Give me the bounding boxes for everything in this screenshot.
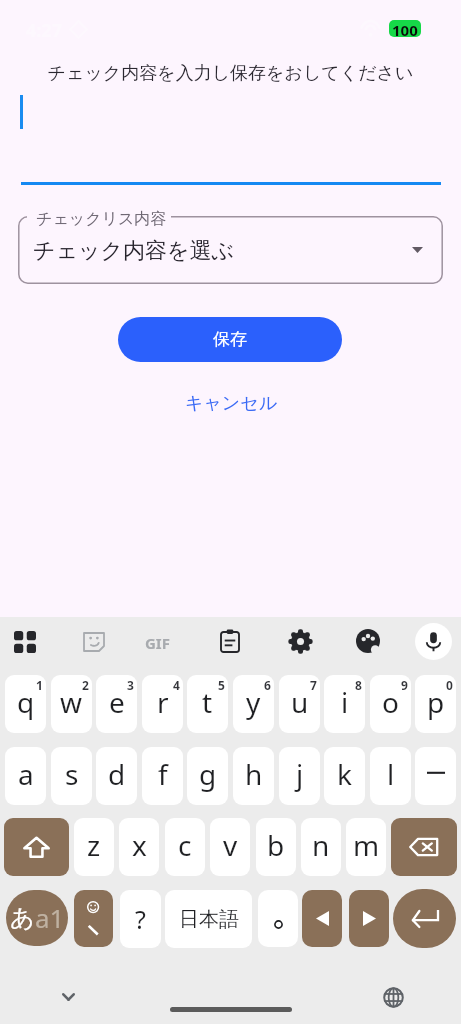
button[interactable]: Apps: [10, 627, 40, 657]
staticText: b: [267, 826, 285, 864]
staticText: 1: [36, 677, 43, 693]
button[interactable]: Backspace: [391, 818, 457, 876]
button[interactable]: Change language: [377, 981, 409, 1013]
staticText: y: [246, 683, 261, 721]
staticText: 3: [127, 677, 134, 693]
staticText: 6: [264, 677, 271, 693]
staticText: f: [158, 755, 168, 793]
staticText: 0: [446, 677, 453, 693]
button[interactable]: m: [346, 818, 386, 876]
button[interactable]: g: [187, 747, 228, 805]
staticText: v: [223, 826, 238, 864]
button[interactable]: c: [165, 818, 205, 876]
button[interactable]: e: [96, 675, 137, 733]
staticText: 8: [355, 677, 362, 693]
button[interactable]: a: [5, 747, 46, 805]
staticText: GIF: [145, 633, 170, 653]
staticText: d: [108, 755, 126, 793]
staticText: 9: [401, 677, 408, 693]
staticText: w: [60, 683, 83, 721]
button[interactable]: q: [5, 675, 46, 733]
button[interactable]: Theme: [353, 626, 383, 656]
button[interactable]: n: [301, 818, 341, 876]
staticText: t: [202, 683, 213, 721]
button[interactable]: y: [233, 675, 274, 733]
button[interactable]: w: [51, 675, 92, 733]
button[interactable]: j: [279, 747, 320, 805]
button[interactable]: h: [233, 747, 274, 805]
button[interactable]: v: [210, 818, 250, 876]
staticText: a1: [35, 900, 65, 935]
staticText: 100: [392, 20, 418, 37]
staticText: ?: [135, 902, 146, 936]
staticText: 4: [173, 677, 180, 693]
button[interactable]: ー: [415, 747, 456, 805]
staticText: m: [353, 826, 380, 864]
staticText: x: [132, 826, 147, 864]
button[interactable]: Cursor left: [302, 890, 342, 947]
staticText: 5: [218, 677, 225, 693]
button[interactable]: Emoji and handwriting: [74, 890, 113, 947]
button[interactable]: s: [51, 747, 92, 805]
button[interactable]: l: [370, 747, 411, 805]
staticText: o: [382, 683, 399, 721]
button[interactable]: o: [370, 675, 411, 733]
button[interactable]: Settings: [285, 626, 315, 656]
button[interactable]: u: [279, 675, 320, 733]
button[interactable]: b: [256, 818, 296, 876]
button[interactable]: チェックリス内容: [18, 216, 443, 284]
button[interactable]: Voice input: [415, 623, 452, 660]
staticText: z: [87, 826, 101, 864]
button[interactable]: r: [142, 675, 183, 733]
staticText: e: [109, 683, 125, 721]
button[interactable]: Hide keyboard: [52, 981, 84, 1013]
staticText: h: [245, 755, 263, 793]
staticText: q: [17, 683, 35, 721]
button[interactable]: Cursor right: [349, 890, 389, 947]
button[interactable]: f: [142, 747, 183, 805]
staticText: チェック内容を入力し保存をおしてください: [0, 62, 461, 85]
staticText: ー: [425, 760, 447, 788]
staticText: j: [296, 755, 304, 793]
button[interactable]: x: [119, 818, 159, 876]
button[interactable]: d: [96, 747, 137, 805]
button[interactable]: Shift: [4, 818, 69, 876]
button[interactable]: [258, 890, 298, 947]
staticText: キャンセル: [185, 392, 278, 415]
button[interactable]: Switch input mode: [6, 890, 68, 946]
staticText: r: [157, 683, 169, 721]
staticText: n: [312, 826, 330, 864]
staticText: c: [178, 826, 192, 864]
staticText: 7: [310, 677, 317, 693]
button[interactable]: Stickers: [79, 626, 109, 656]
staticText: p: [427, 683, 445, 721]
button[interactable]: 日本語: [165, 890, 252, 948]
staticText: チェック内容を選ぶ: [33, 237, 235, 265]
button[interactable]: k: [324, 747, 365, 805]
staticText: チェックリス内容: [36, 209, 167, 229]
button[interactable]: Clipboard: [215, 626, 245, 656]
button[interactable]: 保存: [118, 317, 342, 362]
staticText: 保存: [213, 329, 247, 350]
staticText: k: [337, 755, 352, 793]
button[interactable]: t: [187, 675, 228, 733]
staticText: 2: [82, 677, 89, 693]
button[interactable]: p: [415, 675, 456, 733]
button[interactable]: z: [74, 818, 114, 876]
staticText: あ: [10, 903, 35, 933]
button[interactable]: キャンセル: [164, 386, 298, 420]
staticText: s: [65, 755, 79, 793]
button[interactable]: Enter: [393, 889, 456, 948]
staticText: a: [18, 755, 34, 793]
staticText: 日本語: [179, 907, 239, 932]
staticText: l: [387, 755, 395, 793]
staticText: g: [199, 755, 217, 793]
button[interactable]: i: [324, 675, 365, 733]
staticText: i: [341, 683, 349, 721]
staticText: u: [291, 683, 309, 721]
button[interactable]: ?: [120, 890, 161, 948]
